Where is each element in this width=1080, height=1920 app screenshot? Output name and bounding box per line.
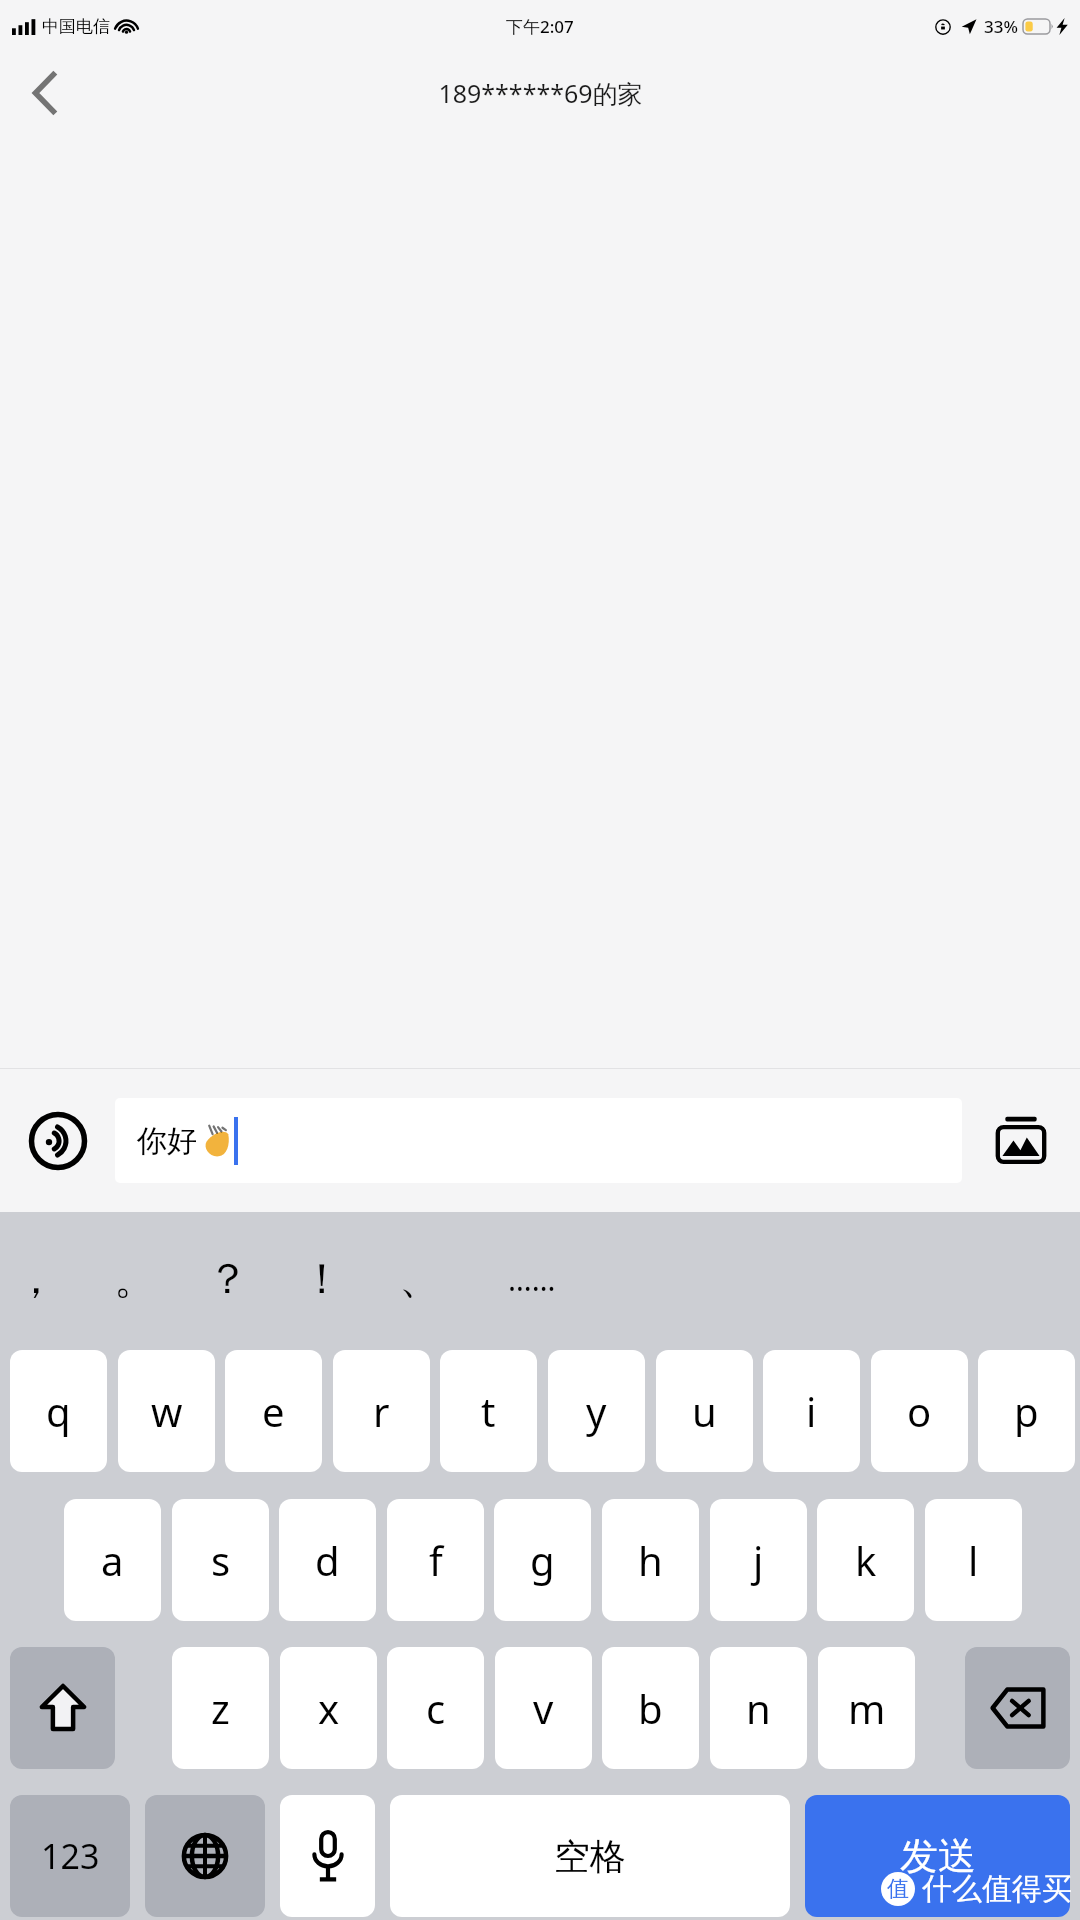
button[interactable]: 。: [89, 1230, 181, 1328]
button[interactable]: Send image: [962, 1069, 1080, 1212]
staticText: ？: [207, 1253, 249, 1306]
staticText: 33%: [984, 15, 1018, 38]
staticText: z: [211, 1681, 230, 1735]
staticText: t: [481, 1384, 496, 1438]
staticText: u: [692, 1384, 717, 1438]
button[interactable]: 发送: [805, 1795, 1070, 1917]
staticText: 189******69的家: [438, 76, 643, 110]
button[interactable]: 你好: [115, 1098, 962, 1183]
button[interactable]: Switch language: [145, 1795, 265, 1917]
staticText: 你好: [137, 1122, 197, 1160]
staticText: d: [315, 1533, 340, 1587]
staticText: g: [530, 1533, 555, 1587]
button[interactable]: b: [602, 1647, 699, 1769]
button[interactable]: Voice input: [0, 1069, 115, 1212]
staticText: 中国电信: [42, 16, 110, 37]
staticText: x: [318, 1681, 340, 1735]
button[interactable]: 空格: [390, 1795, 790, 1917]
button[interactable]: Backspace: [965, 1647, 1070, 1769]
staticText: r: [373, 1384, 390, 1438]
staticText: ……: [508, 1259, 556, 1300]
staticText: c: [426, 1681, 446, 1735]
button[interactable]: v: [495, 1647, 592, 1769]
button[interactable]: f: [387, 1499, 484, 1621]
staticText: a: [101, 1533, 124, 1587]
button[interactable]: w: [118, 1350, 215, 1472]
staticText: l: [968, 1533, 979, 1587]
button[interactable]: i: [763, 1350, 860, 1472]
button[interactable]: 123: [10, 1795, 130, 1917]
button[interactable]: u: [656, 1350, 753, 1472]
button[interactable]: 、: [374, 1230, 466, 1328]
staticText: p: [1014, 1384, 1039, 1438]
staticText: b: [638, 1681, 663, 1735]
button[interactable]: j: [710, 1499, 807, 1621]
button[interactable]: d: [279, 1499, 376, 1621]
button[interactable]: s: [172, 1499, 269, 1621]
button[interactable]: r: [333, 1350, 430, 1472]
button[interactable]: ……: [486, 1230, 578, 1328]
staticText: 空格: [554, 1834, 626, 1879]
button[interactable]: Voice: [280, 1795, 375, 1917]
staticText: 下午2:07: [506, 15, 574, 38]
staticText: 、: [399, 1253, 441, 1306]
button[interactable]: m: [818, 1647, 915, 1769]
staticText: j: [753, 1533, 764, 1587]
button[interactable]: o: [871, 1350, 968, 1472]
button[interactable]: Back: [0, 53, 90, 133]
staticText: v: [533, 1681, 554, 1735]
button[interactable]: c: [387, 1647, 484, 1769]
staticText: i: [806, 1384, 817, 1438]
staticText: s: [211, 1533, 231, 1587]
staticText: 123: [41, 1833, 100, 1879]
button[interactable]: x: [280, 1647, 377, 1769]
staticText: 值: [887, 1875, 909, 1903]
staticText: ！: [301, 1253, 343, 1306]
button[interactable]: ？: [182, 1230, 274, 1328]
staticText: q: [46, 1384, 71, 1438]
button[interactable]: ！: [276, 1230, 368, 1328]
button[interactable]: p: [978, 1350, 1075, 1472]
button[interactable]: e: [225, 1350, 322, 1472]
button[interactable]: n: [710, 1647, 807, 1769]
button[interactable]: y: [548, 1350, 645, 1472]
staticText: k: [855, 1533, 877, 1587]
staticText: m: [848, 1681, 886, 1735]
button[interactable]: t: [440, 1350, 537, 1472]
button[interactable]: Shift: [10, 1647, 115, 1769]
staticText: 。: [114, 1253, 156, 1306]
button[interactable]: k: [817, 1499, 914, 1621]
staticText: 发送: [900, 1832, 976, 1880]
staticText: h: [638, 1533, 663, 1587]
staticText: w: [151, 1384, 183, 1438]
button[interactable]: h: [602, 1499, 699, 1621]
button[interactable]: g: [494, 1499, 591, 1621]
staticText: 什么值得买: [922, 1870, 1072, 1908]
staticText: e: [262, 1384, 285, 1438]
button[interactable]: z: [172, 1647, 269, 1769]
button[interactable]: q: [10, 1350, 107, 1472]
staticText: f: [429, 1533, 443, 1587]
staticText: o: [907, 1384, 932, 1438]
button[interactable]: a: [64, 1499, 161, 1621]
staticText: ，: [15, 1253, 57, 1306]
staticText: y: [586, 1384, 607, 1438]
button[interactable]: ，: [0, 1230, 82, 1328]
staticText: n: [746, 1681, 771, 1735]
button[interactable]: l: [925, 1499, 1022, 1621]
